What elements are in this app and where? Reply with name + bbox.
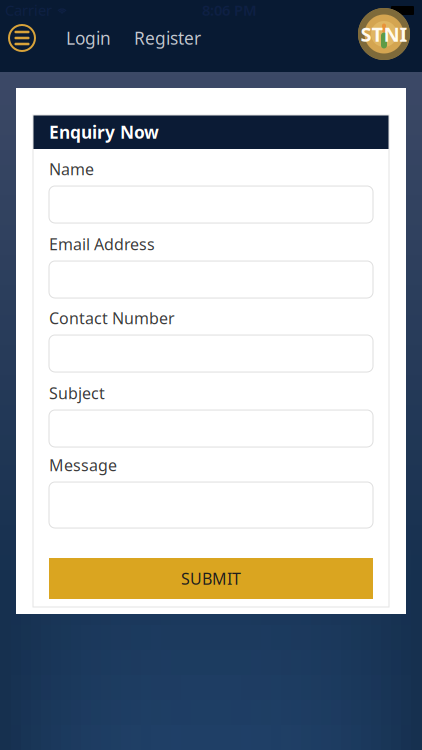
button[interactable]: Menu: [9, 25, 35, 51]
staticText: Login: [66, 26, 111, 49]
staticText: Contact Number: [49, 307, 175, 329]
staticText: Name: [49, 158, 94, 180]
button[interactable]: Login: [66, 26, 111, 49]
button[interactable]: STNI Home: [358, 8, 410, 60]
staticText: Email Address: [49, 233, 155, 255]
staticText: Message: [49, 454, 117, 476]
staticText: SUBMIT: [181, 568, 241, 589]
staticText: 8:06 PM: [202, 0, 257, 20]
staticText: Register: [134, 26, 201, 49]
staticText: Carrier: [5, 0, 52, 20]
button[interactable]: SUBMIT: [49, 558, 373, 599]
staticText: STNI: [360, 21, 407, 47]
staticText: Subject: [49, 382, 105, 404]
button[interactable]: Register: [134, 26, 201, 49]
staticText: Enquiry Now: [49, 120, 159, 143]
